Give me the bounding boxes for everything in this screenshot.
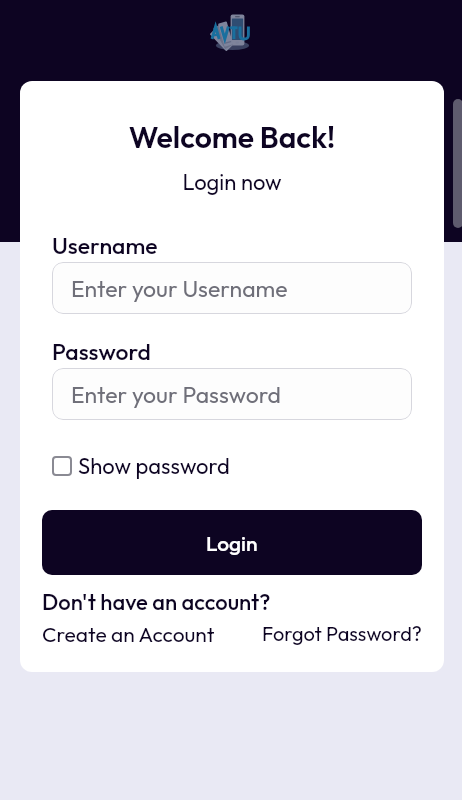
button[interactable]: Show password bbox=[52, 452, 230, 480]
staticText: Username bbox=[52, 231, 158, 260]
staticText: Show password bbox=[78, 452, 230, 480]
button[interactable]: Don't have an account? bbox=[42, 588, 271, 616]
staticText: Password bbox=[52, 337, 151, 366]
button[interactable]: Create an Account bbox=[42, 621, 215, 647]
button[interactable]: Login bbox=[42, 510, 422, 575]
staticText: Login now bbox=[42, 168, 422, 196]
button[interactable]: Forgot Password? bbox=[262, 621, 422, 646]
other: App logo bbox=[210, 13, 253, 51]
staticText: Login bbox=[206, 530, 258, 556]
button[interactable]: Enter your Username bbox=[52, 262, 412, 314]
staticText: Enter your Password bbox=[71, 380, 281, 409]
staticText: Welcome Back! bbox=[42, 118, 422, 156]
staticText: Enter your Username bbox=[71, 274, 288, 303]
button[interactable]: Enter your Password bbox=[52, 368, 412, 420]
